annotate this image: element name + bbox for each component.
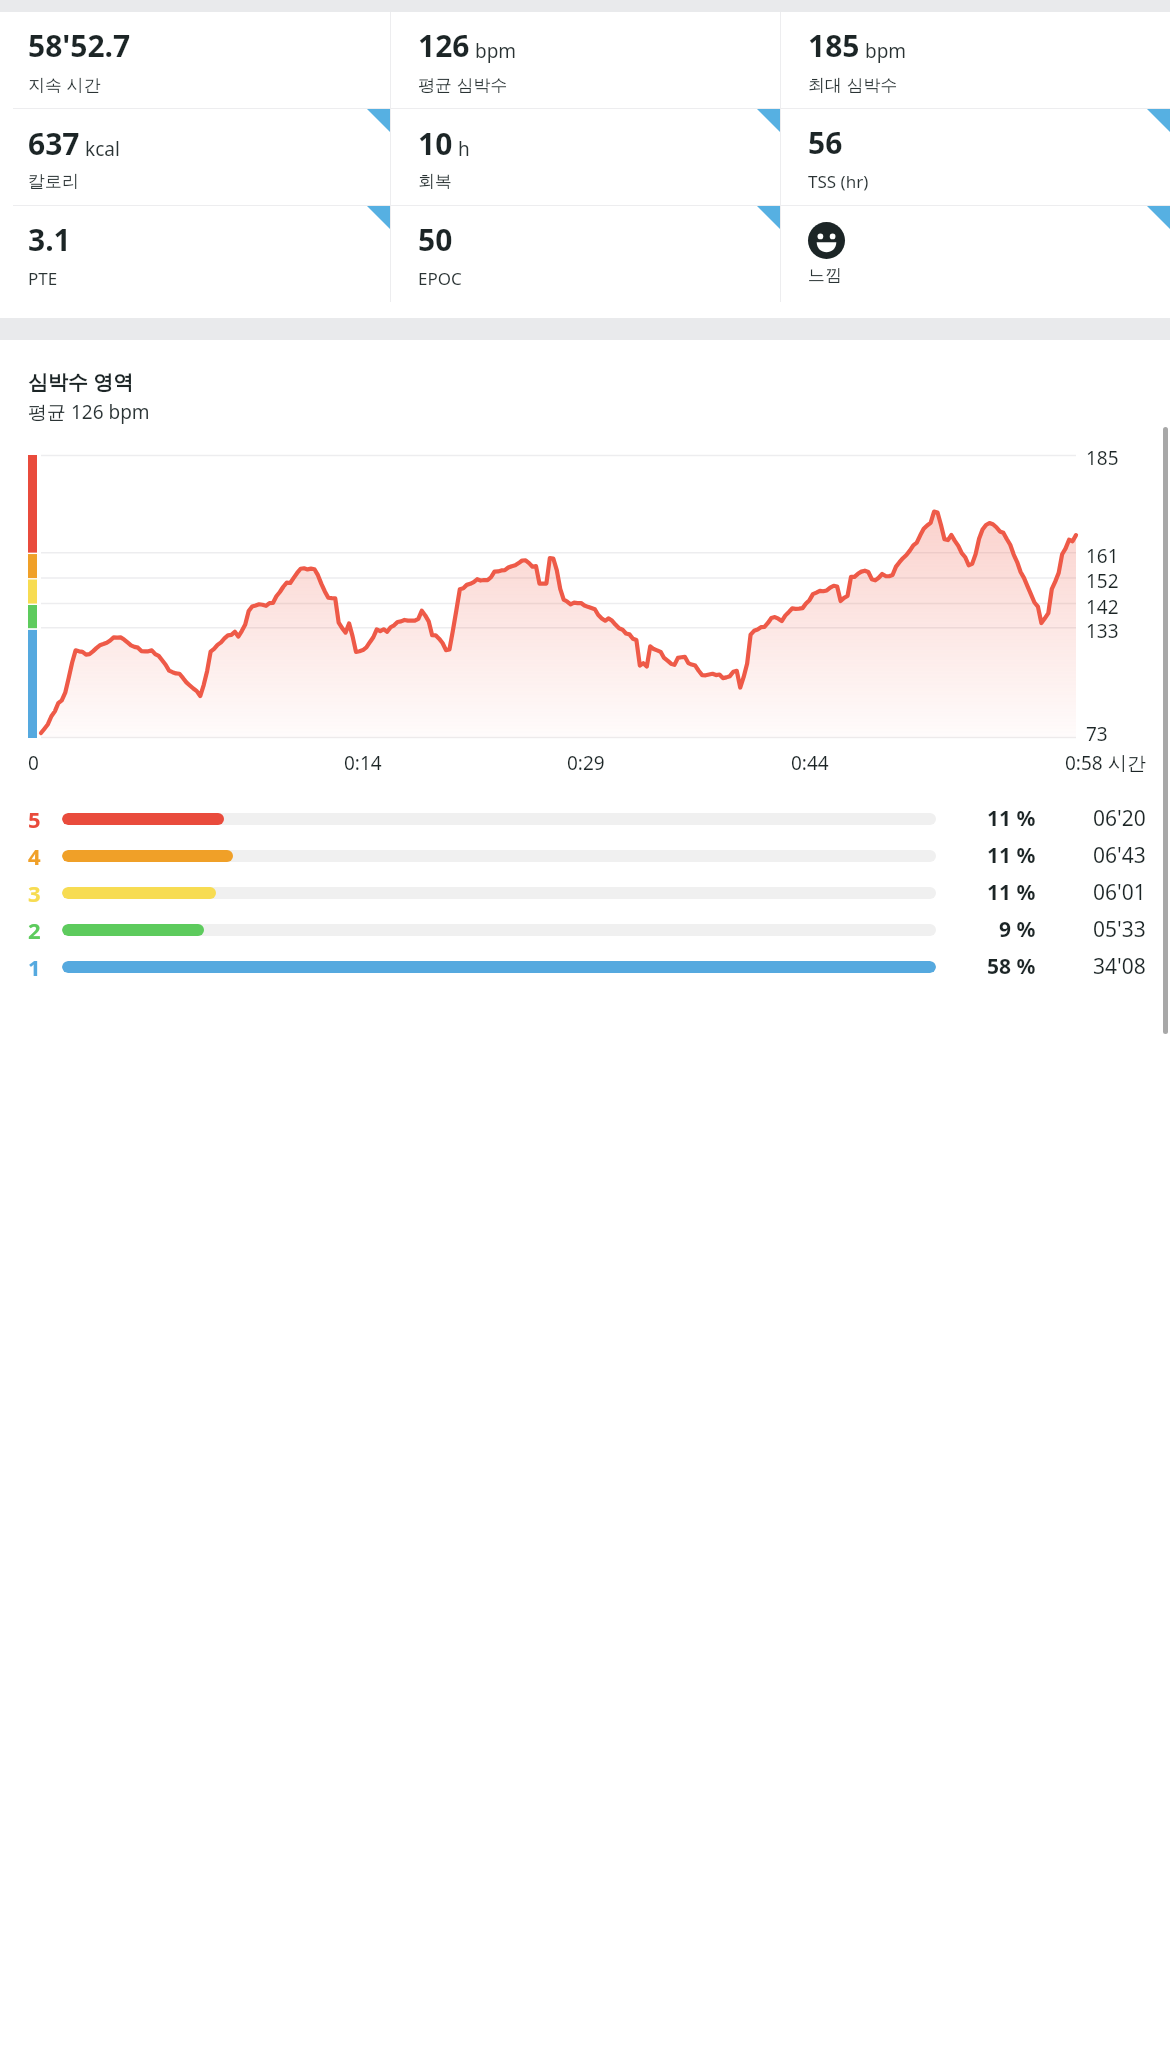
staticText: 185 bbox=[808, 25, 860, 66]
staticText: 1 bbox=[28, 952, 41, 982]
staticText: 0 bbox=[28, 750, 39, 776]
staticText: 637 bbox=[28, 123, 80, 164]
staticText: 73 bbox=[1086, 721, 1108, 747]
staticText: 133 bbox=[1086, 618, 1119, 644]
button[interactable]: 5 bbox=[28, 800, 1146, 837]
staticText: 152 bbox=[1086, 568, 1119, 594]
button[interactable]: 느낌 bbox=[780, 206, 1170, 302]
staticText: 10 bbox=[418, 123, 453, 164]
staticText: 58'52.7 bbox=[28, 25, 131, 66]
staticText: h bbox=[458, 136, 470, 162]
button[interactable]: 58'52.7 bbox=[0, 12, 390, 108]
staticText: 56 bbox=[808, 122, 843, 163]
staticText: TSS (hr) bbox=[808, 170, 869, 193]
staticText: 11 % bbox=[987, 804, 1036, 833]
staticText: 4 bbox=[28, 841, 41, 871]
staticText: 5 bbox=[28, 804, 41, 834]
staticText: PTE bbox=[28, 267, 58, 290]
staticText: 9 % bbox=[999, 915, 1036, 944]
staticText: 34'08 bbox=[1093, 952, 1146, 981]
staticText: 3 bbox=[28, 878, 41, 908]
staticText: 0:29 bbox=[567, 750, 605, 776]
staticText: 0:44 bbox=[791, 750, 829, 776]
button[interactable]: 2 bbox=[28, 911, 1146, 948]
button[interactable]: 3 bbox=[28, 874, 1146, 911]
staticText: 06'01 bbox=[1093, 878, 1146, 907]
staticText: 평균 심박수 bbox=[418, 73, 508, 96]
staticText: 심박수 영역 bbox=[28, 368, 134, 395]
button[interactable]: 56 bbox=[780, 109, 1170, 205]
staticText: 142 bbox=[1086, 594, 1119, 620]
staticText: 회복 bbox=[418, 171, 452, 192]
button[interactable]: 3.1 bbox=[0, 206, 390, 302]
staticText: 평균 126 bpm bbox=[28, 399, 150, 425]
staticText: bpm bbox=[475, 38, 517, 64]
button[interactable]: 50 bbox=[390, 206, 780, 302]
staticText: 느낌 bbox=[808, 265, 842, 286]
staticText: 58 % bbox=[987, 952, 1036, 981]
staticText: 161 bbox=[1086, 543, 1119, 569]
staticText: 185 bbox=[1086, 445, 1119, 471]
staticText: 11 % bbox=[987, 841, 1036, 870]
button[interactable]: 10 bbox=[390, 109, 780, 205]
staticText: 0:14 bbox=[344, 750, 382, 776]
staticText: 지속 시간 bbox=[28, 73, 101, 96]
staticText: 2 bbox=[28, 915, 41, 945]
staticText: 05'33 bbox=[1093, 915, 1146, 944]
button[interactable]: 4 bbox=[28, 837, 1146, 874]
button[interactable]: 185 bbox=[780, 12, 1170, 108]
staticText: kcal bbox=[85, 136, 120, 162]
staticText: 최대 심박수 bbox=[808, 73, 898, 96]
staticText: 11 % bbox=[987, 878, 1036, 907]
staticText: 06'20 bbox=[1093, 804, 1146, 833]
button[interactable]: 126 bbox=[390, 12, 780, 108]
other: 느낌 bbox=[808, 222, 845, 259]
staticText: 50 bbox=[418, 219, 453, 260]
staticText: 126 bbox=[418, 25, 470, 66]
staticText: EPOC bbox=[418, 267, 462, 290]
staticText: 칼로리 bbox=[28, 171, 79, 192]
button[interactable]: 1 bbox=[28, 948, 1146, 985]
staticText: 06'43 bbox=[1093, 841, 1146, 870]
staticText: bpm bbox=[865, 38, 907, 64]
staticText: 3.1 bbox=[28, 219, 71, 260]
staticText: 0:58 시간 bbox=[1065, 750, 1146, 776]
button[interactable]: 637 bbox=[0, 109, 390, 205]
